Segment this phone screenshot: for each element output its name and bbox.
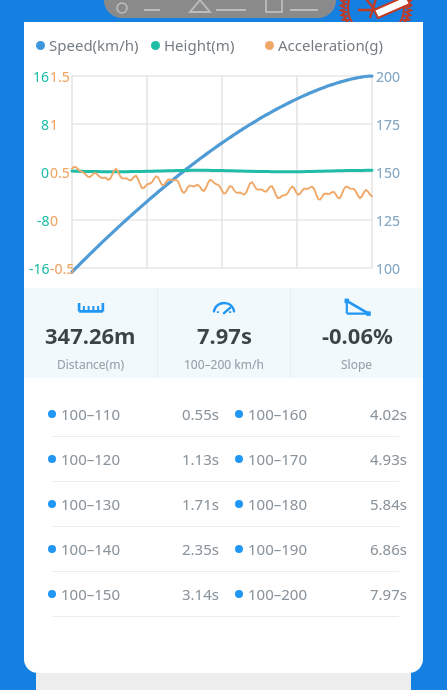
staticText: 100–160	[248, 404, 307, 424]
staticText: 100–190	[248, 539, 307, 559]
staticText: 7.97s	[197, 320, 252, 350]
staticText: -0.5	[50, 259, 75, 278]
staticText: 16	[33, 67, 50, 86]
button[interactable]: 100–110	[36, 392, 411, 436]
staticText: Slope	[341, 356, 373, 372]
button[interactable]: Speed(km/h)	[36, 35, 139, 55]
staticText: 4.02s	[370, 404, 407, 424]
staticText: 100–120	[61, 449, 120, 469]
button[interactable]: 100–120	[36, 437, 411, 481]
staticText: 100–110	[61, 404, 120, 424]
staticText: 2.35s	[182, 539, 219, 559]
staticText: 100–170	[248, 449, 307, 469]
staticText: 3.14s	[182, 584, 219, 604]
button[interactable]: 100–150	[36, 572, 411, 616]
button[interactable]: Distance(m)	[24, 288, 157, 372]
staticText: 0	[50, 211, 59, 230]
staticText: 150	[376, 163, 401, 182]
button[interactable]: Slope	[291, 288, 423, 372]
staticText: 1.13s	[182, 449, 219, 469]
button[interactable]: Weather conditions	[104, 0, 336, 18]
staticText: 100–150	[61, 584, 120, 604]
staticText: 100–140	[61, 539, 120, 559]
staticText: 8	[41, 115, 50, 134]
staticText: 1.71s	[182, 494, 219, 514]
staticText: 347.26m	[45, 320, 136, 350]
staticText: 100–130	[61, 494, 120, 514]
staticText: -0.06%	[322, 320, 393, 350]
staticText: 0.55s	[182, 404, 219, 424]
staticText: 6.86s	[370, 539, 407, 559]
staticText: 1	[50, 115, 59, 134]
button[interactable]: Height(m)	[151, 35, 235, 55]
staticText: 200	[376, 67, 401, 86]
staticText: Height(m)	[164, 35, 235, 55]
button[interactable]: 100–130	[36, 482, 411, 526]
staticText: 1.5	[50, 67, 70, 86]
staticText: 7.97s	[370, 584, 407, 604]
staticText: 125	[376, 211, 401, 230]
staticText: -16	[29, 259, 50, 278]
staticText: 100–200 km/h	[184, 356, 264, 372]
staticText: Distance(m)	[57, 356, 125, 372]
button[interactable]: 100–200 km/h	[158, 288, 290, 372]
staticText: 175	[376, 115, 401, 134]
staticText: 100	[376, 259, 401, 278]
staticText: 100–200	[248, 584, 307, 604]
staticText: Acceleration(g)	[278, 35, 383, 55]
staticText: 5.84s	[370, 494, 407, 514]
staticText: -8	[37, 211, 50, 230]
staticText: 4.93s	[370, 449, 407, 469]
staticText: 0.5	[50, 163, 70, 182]
button[interactable]: Acceleration(g)	[265, 35, 383, 55]
button[interactable]: 100–140	[36, 527, 411, 571]
staticText: 100–180	[248, 494, 307, 514]
staticText: Speed(km/h)	[49, 35, 139, 55]
staticText: 0	[41, 163, 50, 182]
